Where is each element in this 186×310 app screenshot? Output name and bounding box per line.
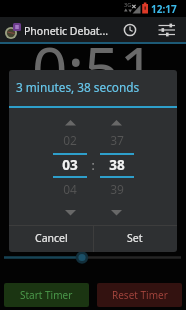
- staticText: Set: [127, 231, 143, 245]
- button[interactable]: Phonetic Debat...: [0, 17, 186, 42]
- staticText: 38: [109, 156, 125, 174]
- staticText: Phonetic Debat...: [24, 24, 109, 38]
- staticText: Cancel: [35, 231, 68, 245]
- staticText: Start Timer: [20, 288, 73, 302]
- staticText: 04: [63, 181, 77, 197]
- staticText: :: [91, 157, 95, 173]
- button[interactable]: Cancel: [9, 225, 93, 250]
- staticText: 37: [110, 132, 124, 148]
- button[interactable]: Reset Timer: [97, 283, 182, 307]
- button[interactable]: Set: [93, 225, 177, 250]
- staticText: 3G: [124, 1, 132, 8]
- staticText: 39: [110, 181, 124, 197]
- staticText: 02: [63, 132, 77, 148]
- staticText: 0:51: [32, 26, 156, 110]
- staticText: 12:17: [151, 2, 177, 16]
- staticText: 3 minutes, 38 seconds: [16, 79, 140, 95]
- staticText: Reset Timer: [112, 288, 168, 302]
- button[interactable]: Start Timer: [4, 283, 89, 307]
- staticText: 03: [62, 156, 78, 174]
